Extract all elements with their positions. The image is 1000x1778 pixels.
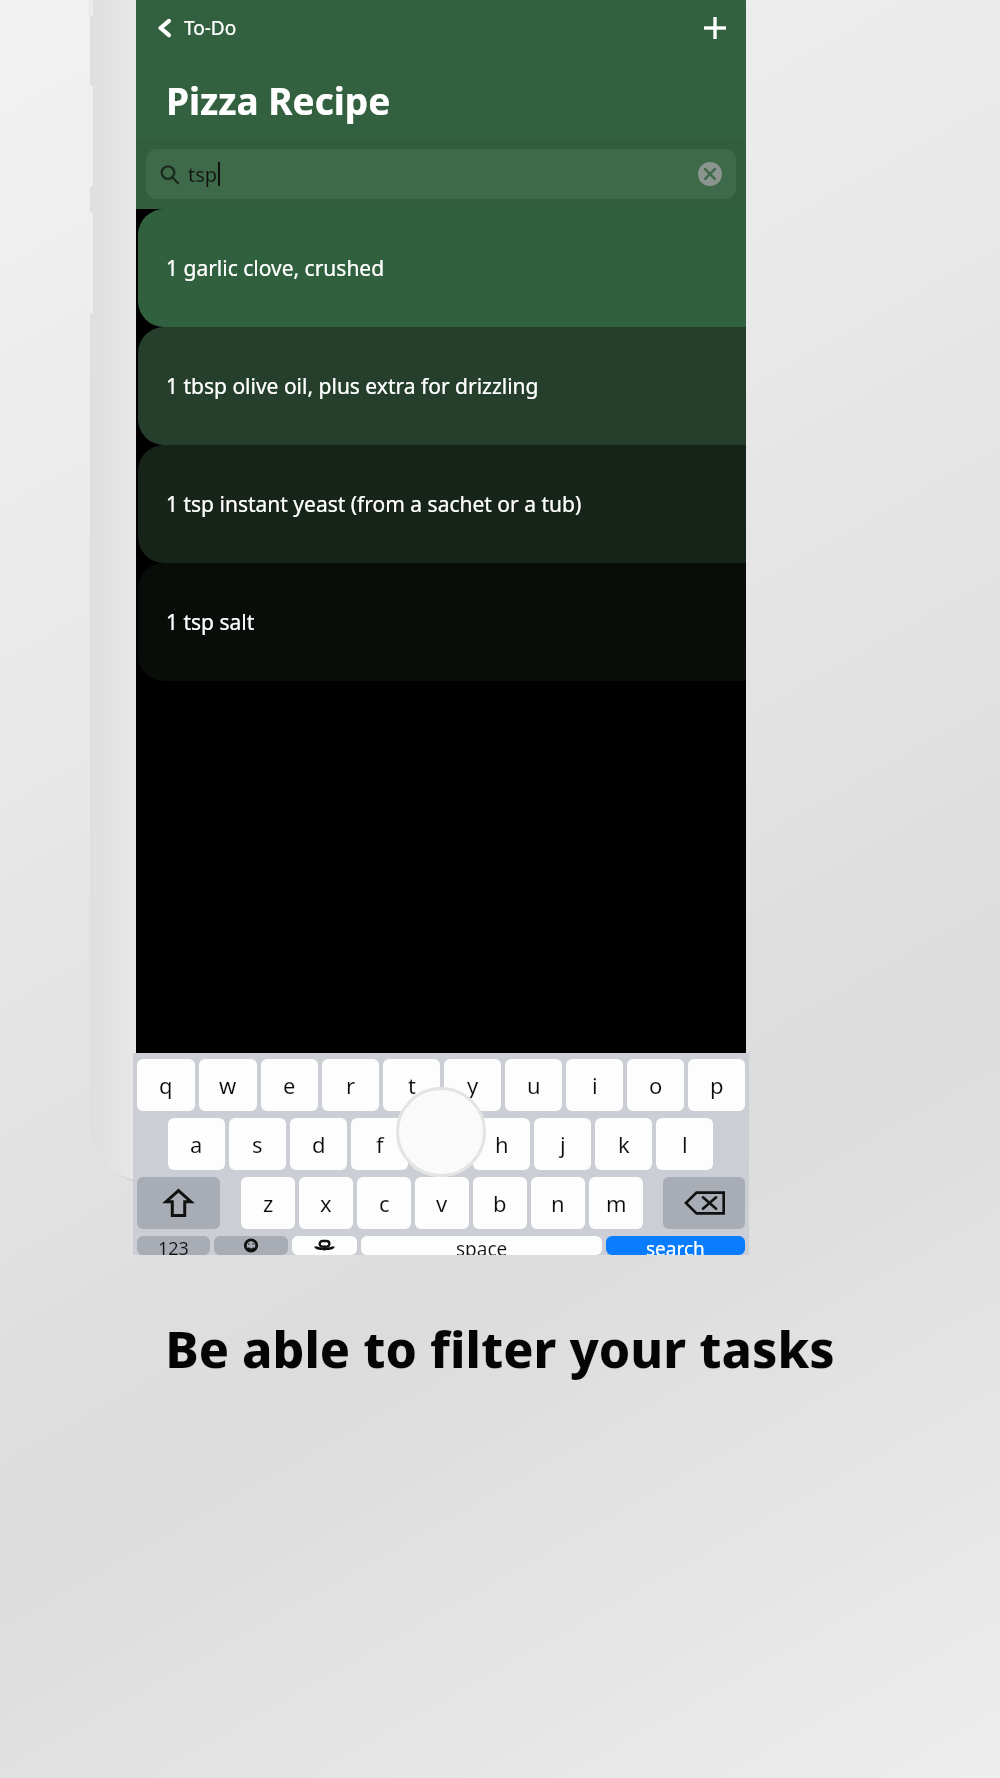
button[interactable]: w bbox=[199, 1059, 257, 1111]
staticText: space bbox=[456, 1236, 508, 1255]
button[interactable]: 1 tsp instant yeast (from a sachet or a … bbox=[138, 445, 746, 563]
button[interactable]: z bbox=[241, 1177, 295, 1229]
staticText: To-Do bbox=[184, 15, 237, 41]
button[interactable]: Shift bbox=[137, 1177, 220, 1229]
staticText: q bbox=[159, 1070, 173, 1100]
button[interactable]: To-Do bbox=[136, 4, 245, 52]
staticText: m bbox=[606, 1188, 627, 1218]
button[interactable]: 1 tsp salt bbox=[138, 563, 746, 681]
button[interactable]: m bbox=[589, 1177, 643, 1229]
button[interactable]: l bbox=[656, 1118, 713, 1170]
button[interactable]: tsp bbox=[146, 149, 736, 199]
button[interactable]: s bbox=[229, 1118, 286, 1170]
button[interactable]: 1 garlic clove, crushed bbox=[138, 209, 746, 327]
button[interactable]: y bbox=[444, 1059, 501, 1111]
button[interactable]: Voice input bbox=[292, 1236, 357, 1255]
button[interactable]: Clear search bbox=[690, 154, 730, 194]
button[interactable]: Add task bbox=[688, 1, 742, 55]
staticText: t bbox=[408, 1070, 416, 1100]
button[interactable]: space bbox=[361, 1236, 602, 1255]
button[interactable]: j bbox=[534, 1118, 591, 1170]
button[interactable]: p bbox=[688, 1059, 745, 1111]
button[interactable]: k bbox=[595, 1118, 652, 1170]
button[interactable]: 1 tbsp olive oil, plus extra for drizzli… bbox=[138, 327, 746, 445]
staticText: z bbox=[263, 1188, 274, 1218]
staticText: x bbox=[320, 1188, 332, 1218]
staticText: search bbox=[646, 1236, 705, 1255]
staticText: c bbox=[379, 1188, 390, 1218]
button[interactable]: t bbox=[383, 1059, 440, 1111]
staticText: e bbox=[283, 1070, 296, 1100]
staticText: j bbox=[560, 1129, 566, 1159]
staticText: v bbox=[436, 1188, 448, 1218]
button[interactable]: 123 bbox=[137, 1236, 210, 1255]
staticText: 1 tsp instant yeast (from a sachet or a … bbox=[166, 490, 582, 519]
button[interactable]: x bbox=[299, 1177, 353, 1229]
staticText: i bbox=[592, 1070, 598, 1100]
staticText: 1 garlic clove, crushed bbox=[166, 254, 385, 283]
staticText: a bbox=[190, 1129, 203, 1159]
staticText: n bbox=[551, 1188, 565, 1218]
staticText: b bbox=[493, 1188, 507, 1218]
staticText: p bbox=[710, 1070, 724, 1100]
staticText: l bbox=[682, 1129, 688, 1159]
button[interactable]: h bbox=[473, 1118, 530, 1170]
button[interactable]: n bbox=[531, 1177, 585, 1229]
staticText: Be able to filter your tasks bbox=[150, 1315, 850, 1383]
button[interactable]: v bbox=[415, 1177, 469, 1229]
staticText: k bbox=[618, 1129, 630, 1159]
staticText: r bbox=[346, 1070, 356, 1100]
button[interactable]: search bbox=[606, 1236, 745, 1255]
button[interactable]: f bbox=[351, 1118, 408, 1170]
staticText: tsp bbox=[188, 161, 218, 188]
button[interactable]: Emoji bbox=[214, 1236, 288, 1255]
staticText: Pizza Recipe bbox=[166, 75, 391, 125]
button[interactable]: a bbox=[168, 1118, 225, 1170]
staticText: h bbox=[495, 1129, 509, 1159]
button[interactable]: c bbox=[357, 1177, 411, 1229]
button[interactable]: o bbox=[627, 1059, 684, 1111]
button[interactable]: g bbox=[412, 1118, 469, 1170]
button[interactable]: b bbox=[473, 1177, 527, 1229]
button[interactable]: e bbox=[261, 1059, 318, 1111]
staticText: y bbox=[467, 1070, 479, 1100]
button[interactable]: d bbox=[290, 1118, 347, 1170]
button[interactable]: r bbox=[322, 1059, 379, 1111]
staticText: s bbox=[252, 1129, 263, 1159]
staticText: 1 tbsp olive oil, plus extra for drizzli… bbox=[166, 372, 539, 401]
staticText: u bbox=[527, 1070, 541, 1100]
button[interactable]: i bbox=[566, 1059, 623, 1111]
staticText: f bbox=[376, 1129, 384, 1159]
staticText: 1 tsp salt bbox=[166, 608, 255, 637]
button[interactable]: q bbox=[137, 1059, 195, 1111]
staticText: 123 bbox=[158, 1236, 189, 1255]
button[interactable]: Backspace bbox=[663, 1177, 745, 1229]
button[interactable]: u bbox=[505, 1059, 562, 1111]
staticText: w bbox=[219, 1070, 237, 1100]
staticText: d bbox=[312, 1129, 326, 1159]
staticText: o bbox=[649, 1070, 663, 1100]
